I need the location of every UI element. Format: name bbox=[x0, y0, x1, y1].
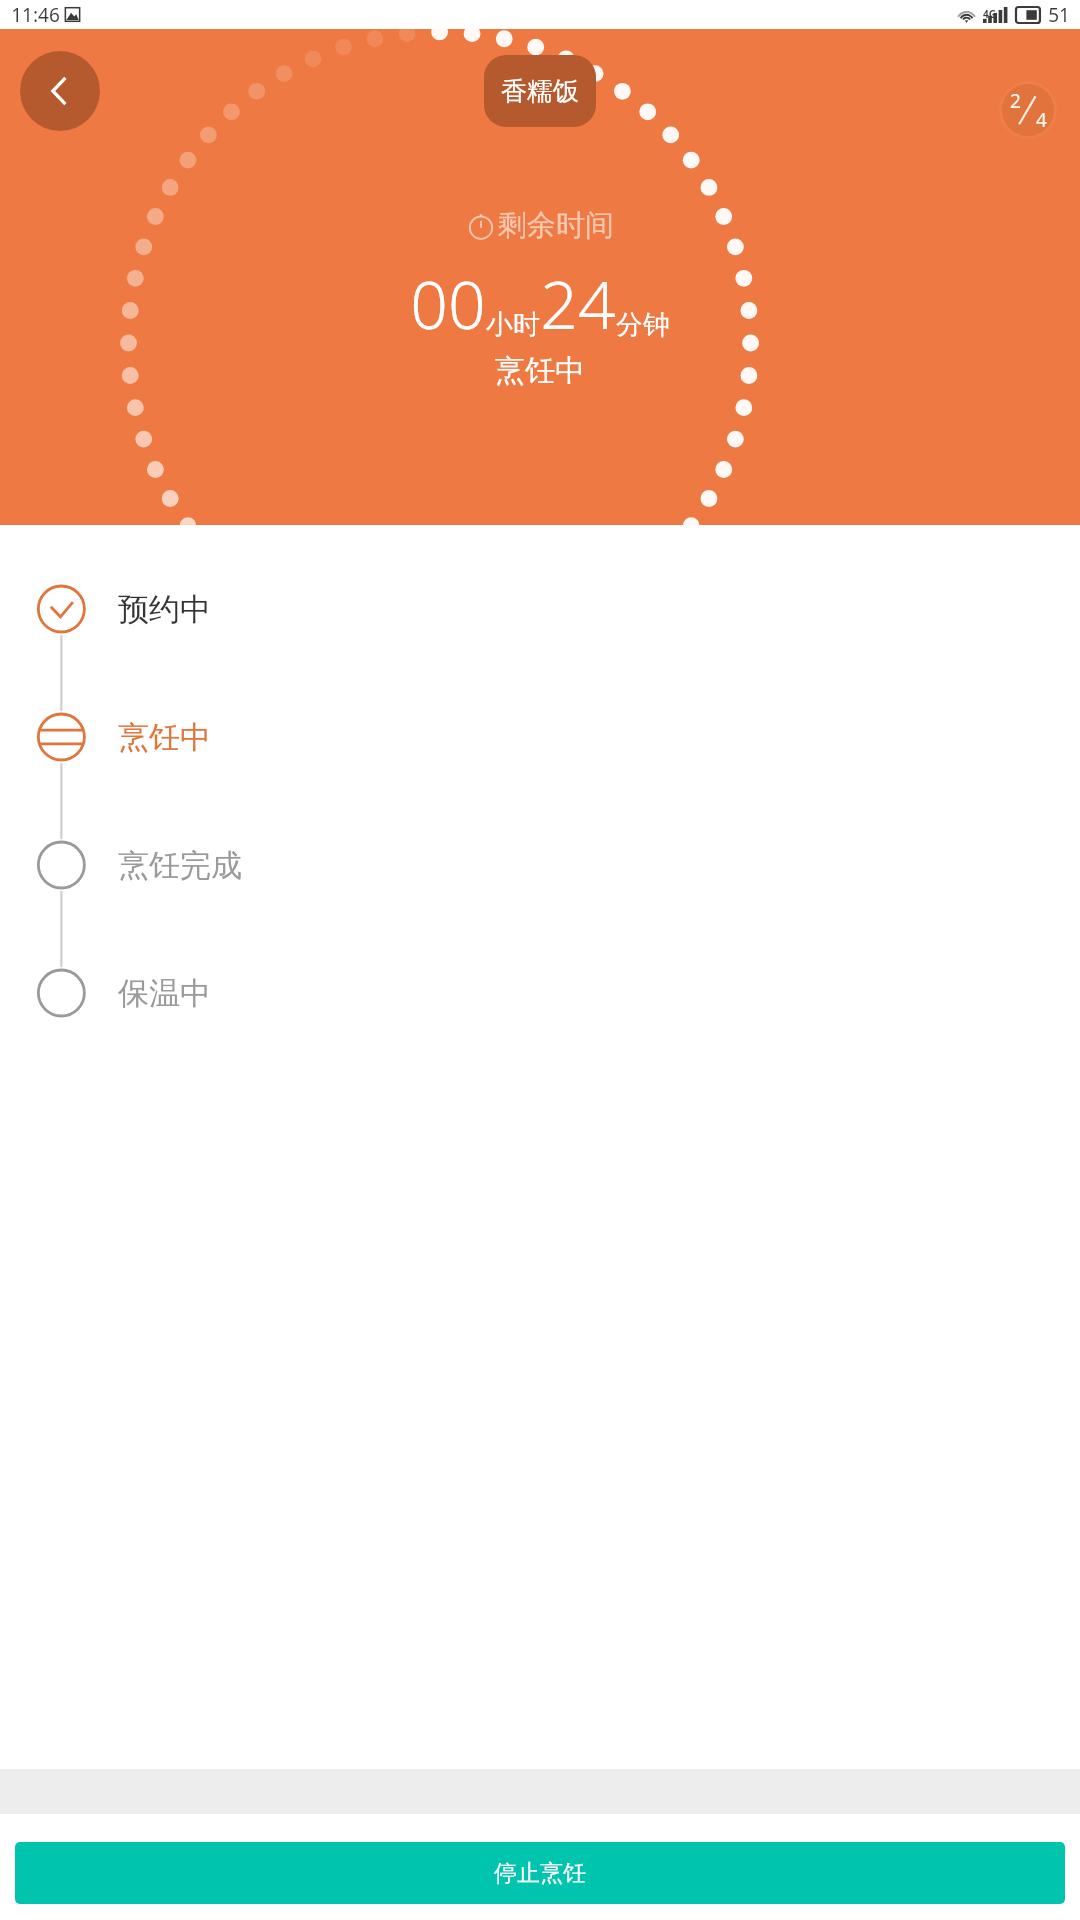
staticText: 分钟 bbox=[616, 308, 670, 342]
button[interactable]: 烹饪完成 bbox=[0, 801, 1080, 929]
staticText: 烹饪中 bbox=[118, 718, 211, 757]
staticText: 香糯饭 bbox=[501, 75, 579, 108]
staticText: 51 bbox=[1048, 2, 1070, 28]
staticText: 预约中 bbox=[118, 590, 211, 629]
staticText: 剩余时间 bbox=[498, 207, 614, 244]
button[interactable]: 预约中 bbox=[0, 545, 1080, 673]
button[interactable]: 停止烹饪 bbox=[15, 1842, 1065, 1904]
button[interactable]: 保温中 bbox=[0, 929, 1080, 1057]
staticText: 24 bbox=[540, 258, 616, 348]
staticText: 小时 bbox=[486, 308, 540, 342]
button[interactable]: 2 bbox=[999, 81, 1057, 139]
staticText: 烹饪完成 bbox=[118, 846, 242, 885]
staticText: 4G bbox=[983, 7, 996, 21]
button[interactable]: 烹饪中 bbox=[0, 673, 1080, 801]
staticText: 2 bbox=[1010, 88, 1021, 114]
staticText: 11:46 bbox=[11, 2, 60, 28]
staticText: 烹饪中 bbox=[495, 352, 585, 390]
staticText: 4 bbox=[1036, 107, 1047, 133]
staticText: 00 bbox=[410, 258, 486, 348]
button[interactable]: 香糯饭 bbox=[484, 55, 596, 127]
button[interactable]: Back bbox=[20, 51, 100, 131]
staticText: 保温中 bbox=[118, 974, 211, 1013]
staticText: 停止烹饪 bbox=[494, 1859, 586, 1888]
